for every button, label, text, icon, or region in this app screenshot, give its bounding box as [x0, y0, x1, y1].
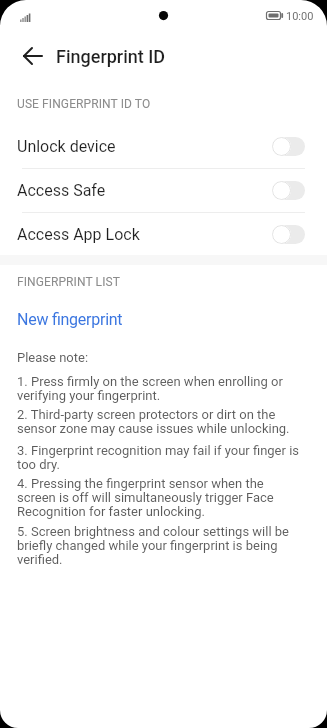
staticText: New fingerprint: [17, 310, 123, 329]
staticText: Access App Lock: [17, 225, 140, 244]
staticText: Please note:: [17, 350, 325, 365]
staticText: 2. Third-party screen protectors or dirt…: [17, 407, 325, 436]
button[interactable]: Unlock device: [0, 124, 327, 168]
staticText: 10:00: [286, 10, 314, 23]
staticText: 1. Press firmly on the screen when enrol…: [17, 374, 325, 403]
staticText: 3. Fingerprint recognition may fail if y…: [17, 443, 325, 472]
staticText: Unlock device: [17, 137, 116, 156]
staticText: 5. Screen brightness and colour settings…: [17, 524, 325, 567]
staticText: Access Safe: [17, 181, 106, 200]
staticText: FINGERPRINT LIST: [17, 275, 120, 289]
staticText: 4. Pressing the fingerprint sensor when …: [17, 476, 325, 519]
button[interactable]: Access App Lock: [0, 212, 327, 256]
button[interactable]: Access Safe: [0, 168, 327, 212]
staticText: Fingerprint ID: [56, 46, 166, 67]
button[interactable]: [272, 181, 305, 200]
staticText: USE FINGERPRINT ID TO: [17, 97, 151, 111]
button[interactable]: [16, 42, 50, 70]
button[interactable]: New fingerprint: [0, 298, 327, 341]
button[interactable]: [272, 137, 305, 156]
button[interactable]: [272, 225, 305, 244]
